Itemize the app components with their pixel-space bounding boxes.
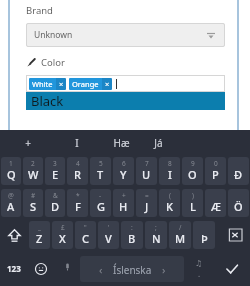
- button[interactable]: Orange: [69, 78, 112, 90]
- staticText: White: [32, 79, 53, 89]
- staticText: ×: [105, 79, 110, 89]
- staticText: Orange: [72, 79, 99, 89]
- staticText: 5: [99, 159, 103, 168]
- button[interactable]: @: [1, 189, 21, 217]
- staticText: 1: [9, 159, 13, 168]
- staticText: ": [84, 223, 87, 232]
- staticText: S: [30, 199, 37, 214]
- staticText: 0: [214, 159, 218, 168]
- button[interactable]: #: [23, 189, 43, 217]
- button[interactable]: Backspace: [216, 219, 250, 251]
- staticText: Unknown: [34, 29, 73, 41]
- button[interactable]: +: [0, 130, 55, 155]
- button[interactable]: 123: [0, 251, 28, 286]
- button[interactable]: 2: [23, 157, 43, 185]
- staticText: E: [52, 167, 59, 182]
- staticText: Þ: [201, 231, 208, 246]
- button[interactable]: Æ: [205, 189, 226, 217]
- button[interactable]: 3: [45, 157, 65, 185]
- button[interactable]: 4: [67, 157, 88, 185]
- staticText: G: [97, 199, 105, 214]
- staticText: ;: [155, 223, 157, 232]
- staticText: -: [99, 191, 102, 200]
- button[interactable]: Já: [144, 130, 172, 155]
- button[interactable]: 1: [1, 157, 21, 185]
- button[interactable]: Ð: [228, 157, 249, 185]
- staticText: R: [74, 167, 81, 182]
- staticText: /: [179, 223, 182, 232]
- staticText: F: [75, 199, 81, 214]
- button[interactable]: 5: [90, 157, 111, 185]
- button[interactable]: ‹: [80, 256, 184, 282]
- staticText: _: [38, 223, 41, 232]
- staticText: 4: [76, 159, 80, 168]
- staticText: N: [152, 231, 161, 246]
- staticText: 123: [7, 263, 21, 274]
- button[interactable]: 8: [159, 157, 180, 185]
- staticText: 6: [122, 159, 126, 168]
- staticText: ): [192, 191, 194, 200]
- staticText: 3: [53, 159, 57, 168]
- button[interactable]: /: [169, 221, 191, 249]
- button[interactable]: &: [45, 189, 65, 217]
- button[interactable]: Emoji: [28, 251, 54, 286]
- staticText: I: [168, 167, 172, 182]
- staticText: Ö: [234, 199, 243, 214]
- staticText: =: [145, 191, 149, 200]
- staticText: Brand: [26, 4, 53, 17]
- button[interactable]: 0: [205, 157, 226, 185]
- button[interactable]: White: [29, 78, 66, 90]
- button[interactable]: (: [159, 189, 180, 217]
- button[interactable]: Shift: [0, 219, 28, 251]
- button[interactable]: Hæ: [98, 130, 144, 155]
- button[interactable]: Black: [26, 92, 225, 110]
- staticText: 9: [191, 159, 195, 168]
- button[interactable]: Þ: [193, 221, 215, 249]
- staticText: Y: [120, 167, 127, 182]
- staticText: L: [190, 199, 196, 214]
- button[interactable]: -: [90, 189, 111, 217]
- button[interactable]: Voice input: [54, 251, 80, 286]
- staticText: ': [108, 223, 110, 232]
- staticText: W: [28, 167, 39, 182]
- staticText: K: [166, 199, 173, 214]
- staticText: (: [169, 191, 171, 200]
- button[interactable]: _: [29, 221, 50, 249]
- staticText: V: [105, 231, 112, 246]
- button[interactable]: ;: [145, 221, 167, 249]
- staticText: I: [75, 136, 79, 150]
- button[interactable]: ': [98, 221, 119, 249]
- button[interactable]: ♫: [184, 251, 214, 286]
- button[interactable]: White: [26, 75, 225, 92]
- staticText: P: [212, 167, 219, 182]
- button[interactable]: 9: [182, 157, 203, 185]
- staticText: ×: [59, 79, 64, 89]
- button[interactable]: =: [136, 189, 157, 217]
- button[interactable]: 6: [113, 157, 134, 185]
- staticText: Já: [154, 136, 163, 150]
- staticText: 8: [168, 159, 172, 168]
- button[interactable]: £: [52, 221, 73, 249]
- staticText: M: [175, 231, 186, 246]
- button[interactable]: ": [75, 221, 96, 249]
- button[interactable]: 7: [136, 157, 157, 185]
- button[interactable]: I: [55, 130, 98, 155]
- button[interactable]: +: [113, 189, 134, 217]
- staticText: £: [61, 223, 65, 232]
- button[interactable]: Unknown: [26, 23, 225, 47]
- staticText: @: [8, 191, 14, 200]
- staticText: O: [188, 167, 197, 182]
- staticText: Æ: [211, 199, 221, 214]
- staticText: +: [122, 191, 126, 200]
- staticText: Q: [7, 167, 16, 182]
- staticText: U: [142, 167, 151, 182]
- staticText: +: [25, 136, 31, 150]
- staticText: #: [31, 191, 36, 200]
- button[interactable]: ): [182, 189, 203, 217]
- staticText: Ð: [234, 167, 243, 182]
- button[interactable]: Done: [214, 251, 250, 286]
- staticText: ›: [162, 262, 166, 277]
- button[interactable]: :: [121, 221, 143, 249]
- button[interactable]: *: [67, 189, 88, 217]
- button[interactable]: Ö: [228, 189, 249, 217]
